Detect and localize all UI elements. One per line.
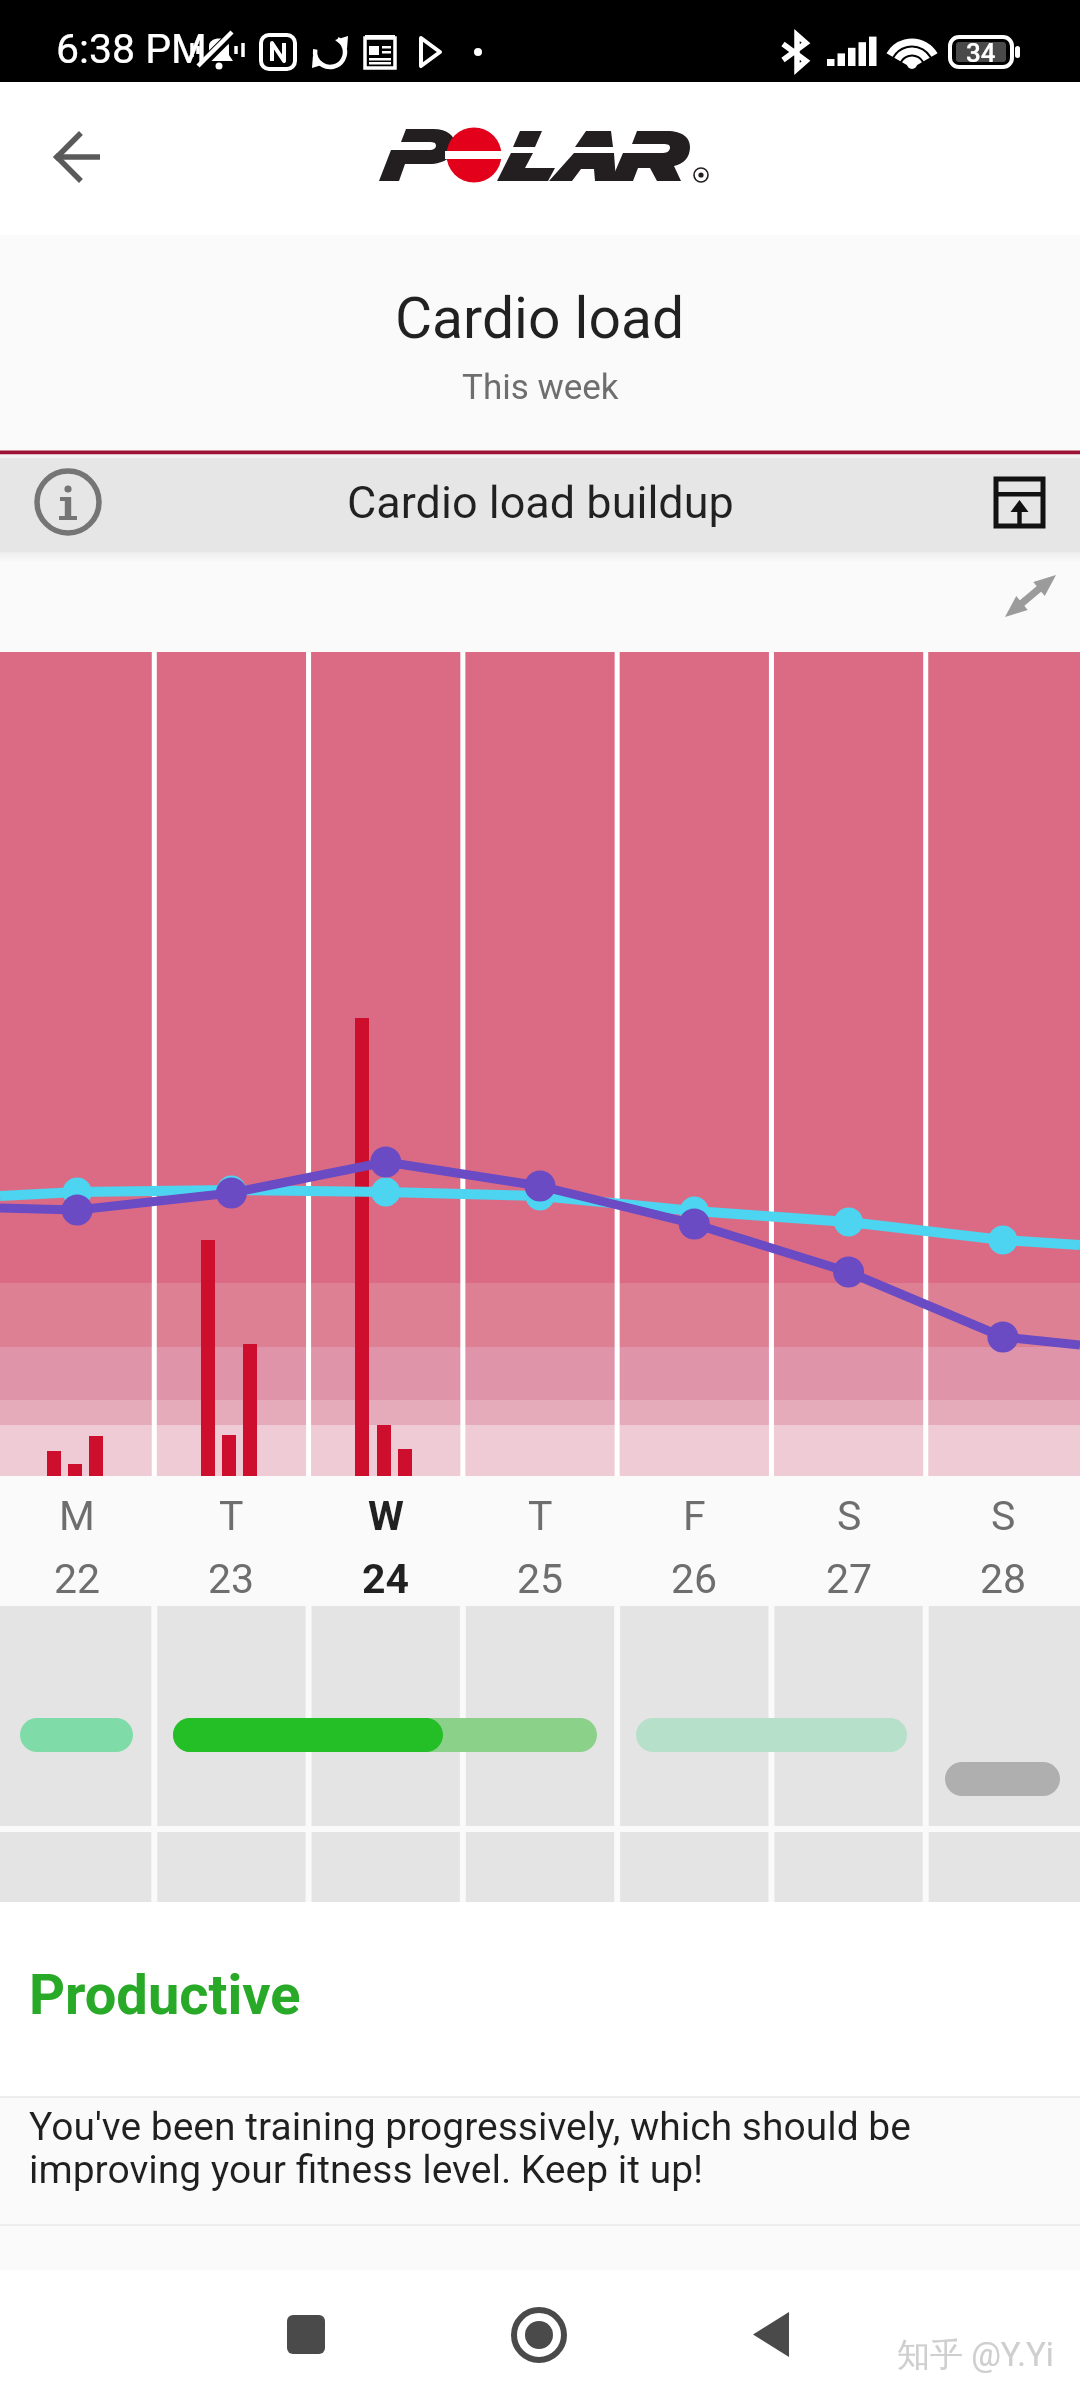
button[interactable]: Resize chart: [975, 570, 1041, 636]
staticText: 22: [54, 1555, 101, 1603]
button[interactable]: Home: [480, 2274, 600, 2394]
staticText: 6:38 PM: [56, 25, 207, 73]
button[interactable]: Back: [711, 2274, 831, 2394]
staticText: W: [368, 1492, 404, 1540]
staticText: Cardio load: [395, 285, 685, 352]
staticText: 24: [362, 1555, 410, 1603]
staticText: 26: [671, 1555, 718, 1603]
staticText: This week: [462, 367, 619, 408]
staticText: 知乎 @Y.Yi: [897, 2334, 1054, 2376]
staticText: 25: [517, 1555, 564, 1603]
staticText: M: [59, 1492, 95, 1540]
staticText: 23: [208, 1555, 255, 1603]
staticText: You've been training progressively, whic…: [29, 2104, 911, 2193]
staticText: Productive: [29, 1962, 301, 2028]
button[interactable]: Expand chart: [975, 468, 1043, 536]
staticText: T: [219, 1492, 244, 1540]
staticText: F: [683, 1492, 706, 1540]
button[interactable]: Info: [24, 468, 92, 536]
button[interactable]: Recent apps: [246, 2274, 366, 2394]
button[interactable]: Back: [30, 110, 124, 204]
staticText: S: [837, 1492, 862, 1540]
staticText: 27: [826, 1555, 873, 1603]
staticText: Cardio load buildup: [347, 476, 734, 529]
staticText: 28: [980, 1555, 1027, 1603]
button[interactable]: [0, 452, 1080, 552]
staticText: T: [528, 1492, 553, 1540]
staticText: S: [991, 1492, 1016, 1540]
staticText: 34: [966, 38, 996, 68]
